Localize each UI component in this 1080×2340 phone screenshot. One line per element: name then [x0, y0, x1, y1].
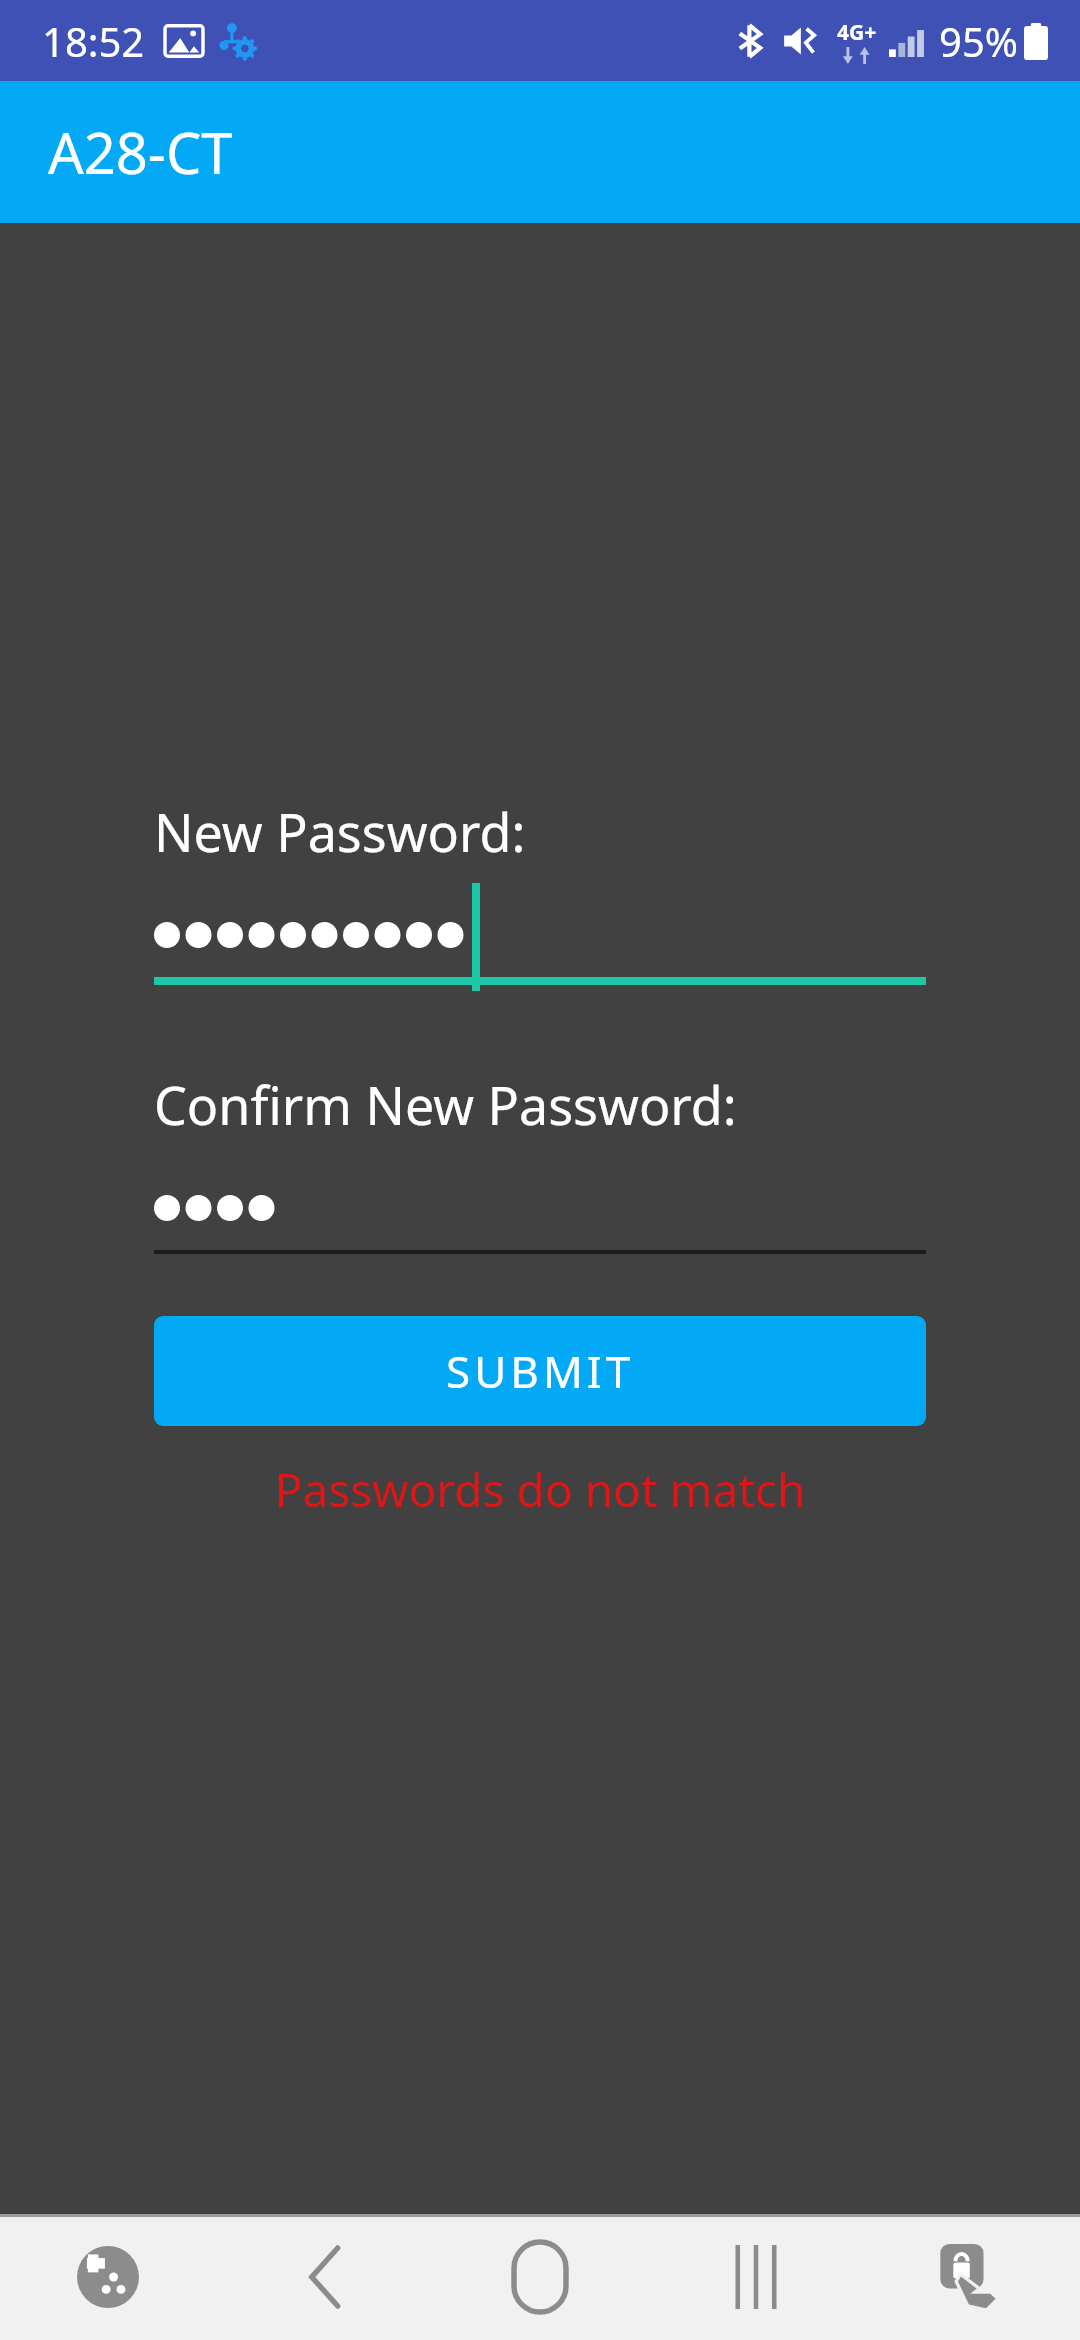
button[interactable] [154, 893, 926, 977]
staticText: New Password: [154, 796, 526, 867]
staticText: 4G+ [837, 18, 877, 47]
staticText: Passwords do not match [154, 1458, 926, 1521]
staticText: 95% [939, 14, 1018, 68]
button[interactable]: Lock navigation bar [864, 2214, 1080, 2340]
button[interactable]: Home [432, 2214, 648, 2340]
staticText: A28-CT [48, 114, 233, 190]
staticText: 18:52 [42, 14, 145, 68]
staticText: Confirm New Password: [154, 1069, 737, 1140]
button[interactable]: Recent apps [648, 2214, 864, 2340]
button[interactable]: Game Launcher [0, 2214, 216, 2340]
button[interactable]: SUBMIT [154, 1316, 926, 1426]
button[interactable]: Back [216, 2214, 432, 2340]
staticText: SUBMIT [446, 1341, 635, 1401]
button[interactable] [154, 1166, 926, 1250]
